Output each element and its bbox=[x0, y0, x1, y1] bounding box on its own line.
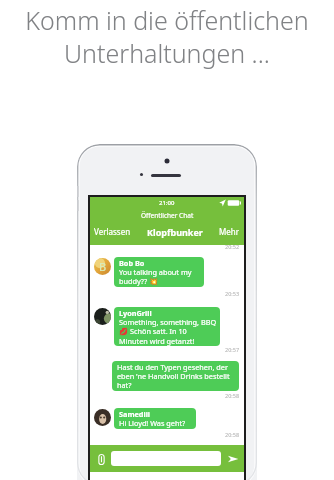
staticText: 💋 Schön satt. In 10 bbox=[119, 326, 217, 336]
staticText: Something, something, BBQ bbox=[119, 317, 217, 327]
staticText: LyonGrill bbox=[119, 308, 217, 318]
button[interactable]: Attach file bbox=[94, 452, 108, 466]
staticText: hat? bbox=[117, 380, 236, 390]
staticText: 20:52 bbox=[225, 243, 240, 250]
staticText: 20:58 bbox=[225, 431, 240, 438]
staticText: Hi Lloyd! Was geht? bbox=[119, 418, 193, 428]
button[interactable] bbox=[111, 451, 221, 466]
staticText: buddy?? 💥 bbox=[119, 276, 201, 286]
button[interactable]: LyonGrill bbox=[114, 307, 220, 346]
staticText: 20:57 bbox=[225, 346, 240, 353]
staticText: Samediii bbox=[119, 409, 193, 419]
staticText: Minuten wird getanzt! bbox=[119, 336, 217, 346]
staticText: Hast du den Typen gesehen, der bbox=[117, 362, 236, 372]
staticText: 20:58 bbox=[225, 392, 240, 399]
staticText: B bbox=[99, 259, 107, 274]
staticText: Bob Bo bbox=[119, 258, 201, 268]
staticText: eben 'ne Handvoll Drinks bestellt bbox=[117, 371, 236, 381]
staticText: 21:00 bbox=[159, 199, 175, 207]
staticText: Öffentlicher Chat bbox=[141, 211, 194, 220]
staticText: Mehr bbox=[219, 226, 240, 237]
staticText: Klopfbunker bbox=[147, 226, 203, 238]
staticText: You talking about my bbox=[119, 267, 201, 277]
button[interactable]: Send message bbox=[226, 452, 240, 466]
staticText: Unterhaltungen ... bbox=[0, 36, 334, 70]
staticText: Verlassen bbox=[94, 226, 131, 237]
staticText: Komm in die öffentlichen bbox=[0, 3, 334, 37]
button[interactable]: Samediii bbox=[114, 408, 196, 429]
button[interactable]: Verlassen bbox=[90, 222, 134, 241]
button[interactable]: Bob Bo bbox=[114, 257, 204, 287]
button[interactable]: Mehr bbox=[216, 222, 244, 241]
button[interactable]: Hast du den Typen gesehen, der bbox=[112, 361, 239, 391]
staticText: 20:53 bbox=[225, 290, 240, 297]
